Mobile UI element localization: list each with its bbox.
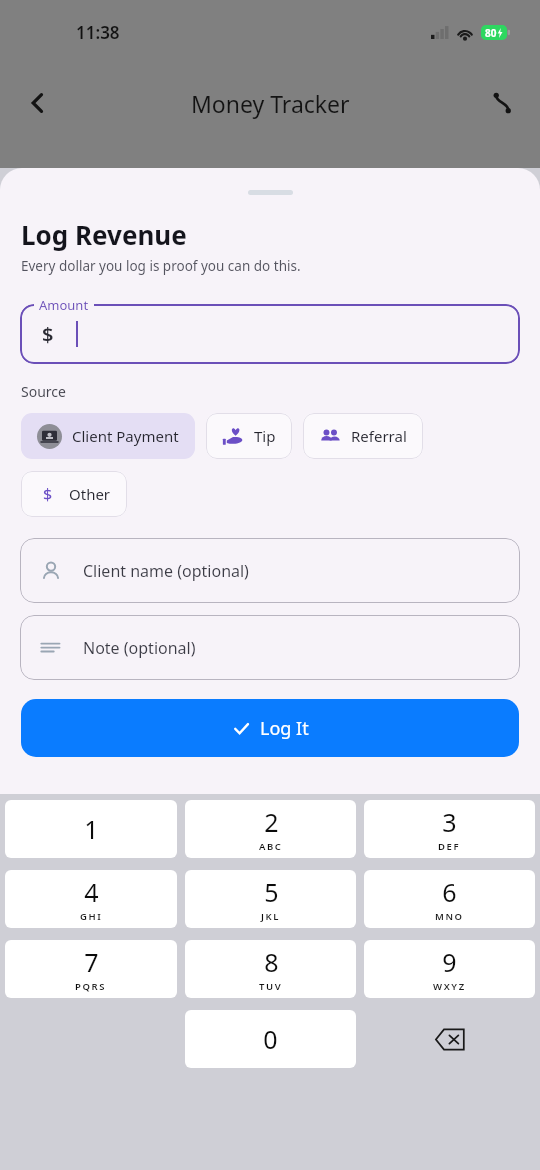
staticText: Referral [351, 426, 407, 446]
button[interactable] [20, 304, 520, 364]
staticText: $ [43, 483, 53, 505]
staticText: JKL [261, 910, 281, 923]
button[interactable]: 7 [5, 940, 177, 998]
staticText: Log Revenue [21, 217, 187, 252]
staticText: Client name (optional) [83, 560, 249, 582]
button[interactable]: Back [14, 79, 62, 127]
staticText: 0 [263, 1022, 278, 1056]
staticText: Money Tracker [191, 88, 350, 119]
button[interactable]: Backspace [364, 1010, 535, 1068]
staticText: GHI [80, 910, 103, 923]
button[interactable]: Client name (optional) [20, 538, 520, 603]
staticText: 3 [442, 805, 457, 839]
staticText: Amount [39, 296, 89, 314]
staticText: 11:38 [76, 21, 120, 44]
button[interactable]: 1 [5, 800, 177, 858]
staticText: PQRS [75, 980, 107, 993]
staticText: Tip [254, 426, 276, 446]
staticText: 6 [442, 875, 457, 909]
staticText: Every dollar you log is proof you can do… [21, 257, 301, 275]
staticText: 8 [264, 945, 279, 979]
staticText: ABC [259, 840, 283, 853]
staticText: 9 [442, 945, 457, 979]
button[interactable]: 0 [185, 1010, 356, 1068]
button[interactable]: Log It [21, 699, 519, 757]
button[interactable]: Referral [303, 413, 423, 459]
button[interactable]: 9 [364, 940, 535, 998]
staticText: Source [21, 382, 66, 401]
staticText: 80 [485, 26, 497, 40]
button[interactable]: Tip [206, 413, 292, 459]
button[interactable]: $ [21, 471, 127, 517]
button[interactable]: 3 [364, 800, 535, 858]
button[interactable]: 8 [185, 940, 356, 998]
staticText: Note (optional) [83, 637, 196, 659]
button[interactable]: 2 [185, 800, 356, 858]
staticText: DEF [438, 840, 461, 853]
button[interactable]: Note (optional) [20, 615, 520, 680]
staticText: 4 [84, 875, 99, 909]
staticText: $ [42, 321, 54, 348]
staticText: Other [69, 484, 111, 504]
staticText: Client Payment [72, 426, 179, 446]
staticText: 5 [264, 875, 279, 909]
button[interactable]: Client Payment [21, 413, 195, 459]
button[interactable]: 5 [185, 870, 356, 928]
staticText: 2 [264, 805, 279, 839]
staticText: 1 [84, 812, 99, 846]
button[interactable]: 4 [5, 870, 177, 928]
staticText: MNO [435, 910, 464, 923]
staticText: Log It [260, 716, 309, 741]
staticText: TUV [259, 980, 283, 993]
staticText: WXYZ [433, 980, 466, 993]
button[interactable]: 6 [364, 870, 535, 928]
button[interactable]: Transfer [478, 79, 526, 127]
staticText: 7 [84, 945, 99, 979]
